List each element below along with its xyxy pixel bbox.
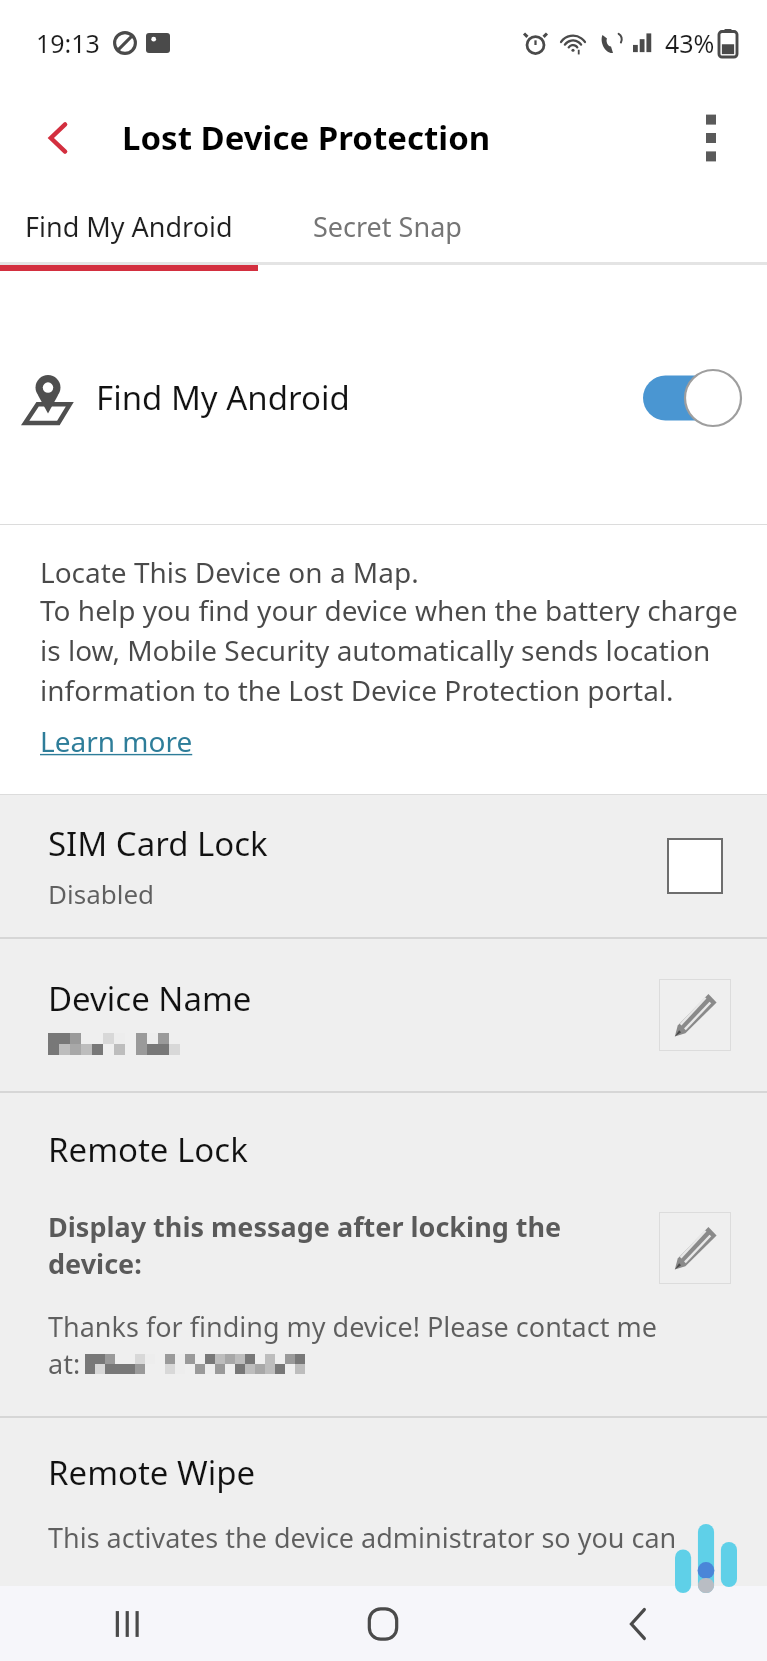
staticText: Disabled — [48, 876, 155, 911]
button[interactable]: Device Name — [0, 939, 767, 1091]
staticText: This activates the device administrator … — [48, 1519, 677, 1556]
staticText: 19:13 — [36, 26, 100, 60]
button[interactable]: SIM Card Lock — [0, 795, 767, 937]
button[interactable]: Back — [30, 109, 88, 167]
button[interactable]: Edit — [659, 979, 731, 1051]
staticText: 43% — [665, 26, 715, 60]
staticText: To help you find your device when the ba… — [40, 591, 738, 710]
button[interactable]: Find My Android — [0, 271, 767, 524]
button[interactable]: Back — [511, 1586, 767, 1661]
button[interactable]: Remote Lock — [0, 1093, 767, 1416]
staticText: Find My Android — [96, 375, 350, 420]
staticText: Display this message after locking the d… — [48, 1208, 659, 1282]
staticText: Lost Device Protection — [122, 115, 491, 160]
button[interactable]: Learn more — [40, 722, 193, 760]
staticText: Thanks for finding my device! Please con… — [48, 1308, 657, 1345]
button[interactable]: Home — [255, 1586, 511, 1661]
staticText: Find My Android — [25, 208, 233, 245]
button[interactable]: Find My Android — [0, 190, 258, 262]
button[interactable]: Remote Wipe — [0, 1418, 767, 1586]
staticText: Locate This Device on a Map. — [40, 553, 419, 591]
staticText: Device Name — [48, 976, 252, 1021]
button[interactable]: Find My Android toggle — [643, 370, 741, 426]
button[interactable]: Edit — [659, 1212, 731, 1284]
staticText: SIM Card Lock — [48, 821, 268, 866]
staticText: Remote Lock — [48, 1127, 248, 1172]
staticText: Remote Wipe — [48, 1450, 256, 1495]
button[interactable]: Recents — [0, 1586, 255, 1661]
other: SIM Card Lock checkbox — [667, 838, 723, 894]
staticText: Learn more — [40, 722, 193, 760]
button[interactable]: Secret Snap — [258, 190, 516, 262]
staticText: Secret Snap — [313, 208, 462, 245]
button[interactable]: More options — [681, 108, 741, 168]
staticText: at: — [48, 1345, 81, 1382]
